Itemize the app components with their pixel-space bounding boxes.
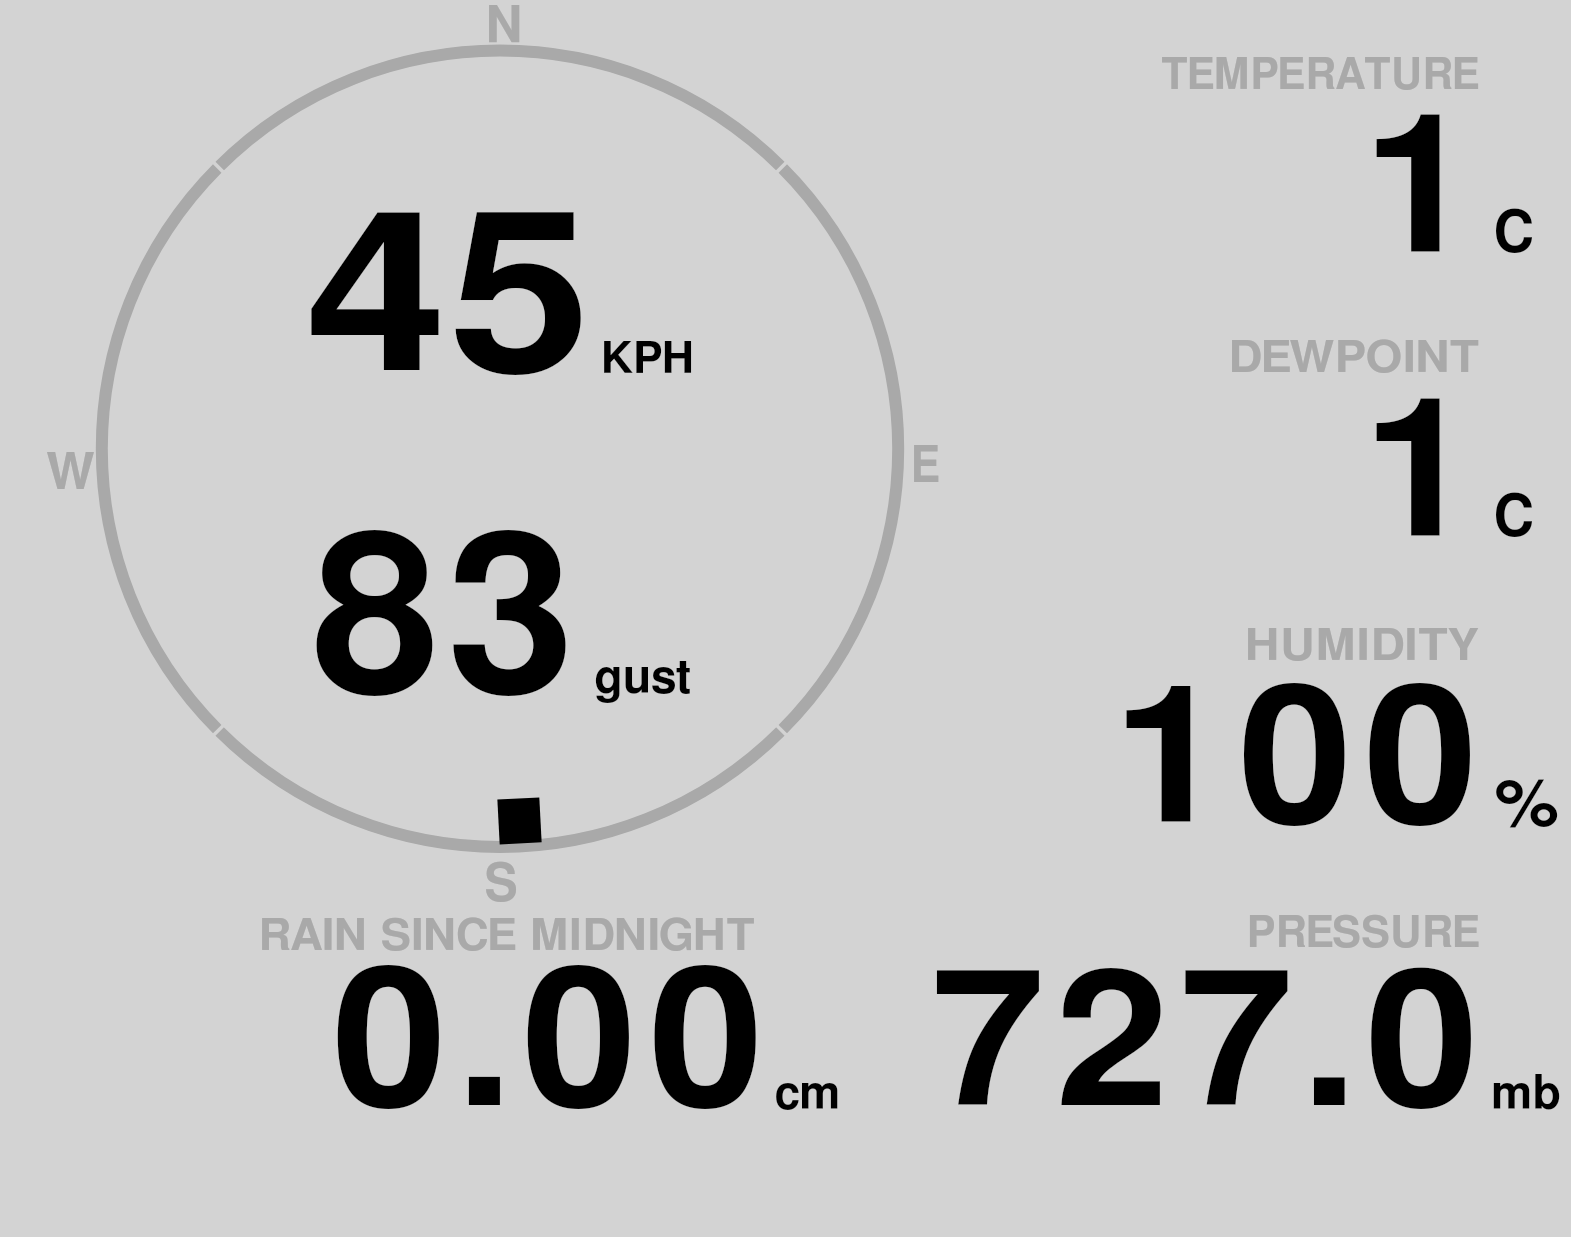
button[interactable]: Wind 45 KPH, gust 83, bearing south: [60, 10, 940, 890]
button[interactable]: Pressure 727.0 mb: [900, 895, 1570, 1125]
button[interactable]: Dewpoint 1 degrees C: [1000, 310, 1560, 580]
button[interactable]: Humidity 100 percent: [1000, 600, 1560, 870]
button[interactable]: Temperature 1 degrees C: [1000, 30, 1560, 300]
button[interactable]: Rain since midnight 0.00 cm: [210, 895, 890, 1125]
